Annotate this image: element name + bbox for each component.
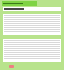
button[interactable]: Action <box>9 65 14 68</box>
button[interactable] <box>3 39 61 62</box>
button[interactable] <box>2 1 37 6</box>
button[interactable] <box>3 7 61 35</box>
